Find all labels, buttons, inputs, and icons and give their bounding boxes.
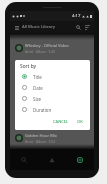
button[interactable]: Home <box>38 149 66 170</box>
staticText: Title <box>33 74 42 80</box>
button[interactable]: Navigation menu <box>12 23 21 32</box>
staticText: Summer Rain Days <box>25 97 61 102</box>
staticText: 4:17 <box>72 13 81 19</box>
staticText: Whiskey - Official Video <box>25 43 69 48</box>
staticText: Night Drive Home <box>25 61 59 66</box>
button[interactable]: Now playing <box>66 149 94 170</box>
staticText: Size <box>33 96 42 102</box>
button[interactable]: Summer Rain Days <box>10 93 94 111</box>
button[interactable]: Ocean Avenue Live <box>10 111 94 129</box>
button[interactable]: Duration <box>15 104 90 115</box>
staticText: Date <box>33 85 43 91</box>
staticText: Artist · Album · 4:12 <box>25 67 56 71</box>
staticText: OK <box>77 119 83 124</box>
button[interactable]: OK <box>75 117 85 126</box>
staticText: All Music Library <box>22 24 55 30</box>
button[interactable]: Date <box>15 82 90 93</box>
staticText: Artist · Album · 3:52 <box>25 139 56 143</box>
staticText: Artist · Album · 2:58 <box>25 85 56 89</box>
button[interactable]: Sort <box>83 23 92 32</box>
staticText: Artist · Album · 3:45 <box>25 49 56 53</box>
staticText: Sort by <box>20 63 37 70</box>
button[interactable]: Whiskey - Official Video <box>10 39 94 57</box>
staticText: CANCEL <box>53 119 69 124</box>
staticText: Artist · Album · 4:02 <box>25 157 56 161</box>
button[interactable]: Falling Into Stars <box>10 75 94 93</box>
button[interactable]: Title <box>15 71 90 82</box>
button[interactable]: Search <box>74 23 83 32</box>
button[interactable]: Night Drive Home <box>10 57 94 75</box>
staticText: Artist · Album · 3:08 <box>25 121 56 125</box>
button[interactable]: CANCEL <box>51 117 71 126</box>
staticText: Golden Hour Mix <box>25 133 57 138</box>
button[interactable]: Velvet Morning <box>10 147 94 165</box>
staticText: Duration <box>33 107 52 113</box>
button[interactable]: Size <box>15 93 90 104</box>
button[interactable]: Golden Hour Mix <box>10 129 94 147</box>
button[interactable]: Search <box>10 149 38 170</box>
